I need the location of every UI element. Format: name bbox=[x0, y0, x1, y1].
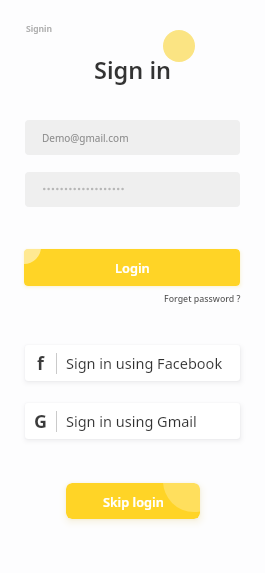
button[interactable]: Demo@gmail.com bbox=[25, 120, 240, 155]
staticText: Sign in bbox=[94, 54, 172, 86]
staticText: Skip login bbox=[103, 493, 164, 510]
staticText: Sign in using Gmail bbox=[66, 411, 197, 431]
staticText: G bbox=[34, 409, 48, 434]
button[interactable]: Login bbox=[24, 249, 240, 286]
staticText: Forget password ? bbox=[164, 293, 241, 305]
staticText: Login bbox=[115, 259, 150, 276]
staticText: Signin bbox=[26, 23, 52, 35]
button[interactable]: Forget password ? bbox=[150, 292, 241, 306]
staticText: Sign in using Facebook bbox=[66, 353, 223, 373]
button[interactable]: Skip login bbox=[66, 483, 200, 519]
button[interactable]: G bbox=[25, 403, 240, 439]
button[interactable]: Password bbox=[25, 172, 240, 207]
button[interactable]: f bbox=[25, 345, 240, 381]
staticText: Demo@gmail.com bbox=[42, 131, 129, 145]
staticText: f bbox=[37, 351, 44, 376]
